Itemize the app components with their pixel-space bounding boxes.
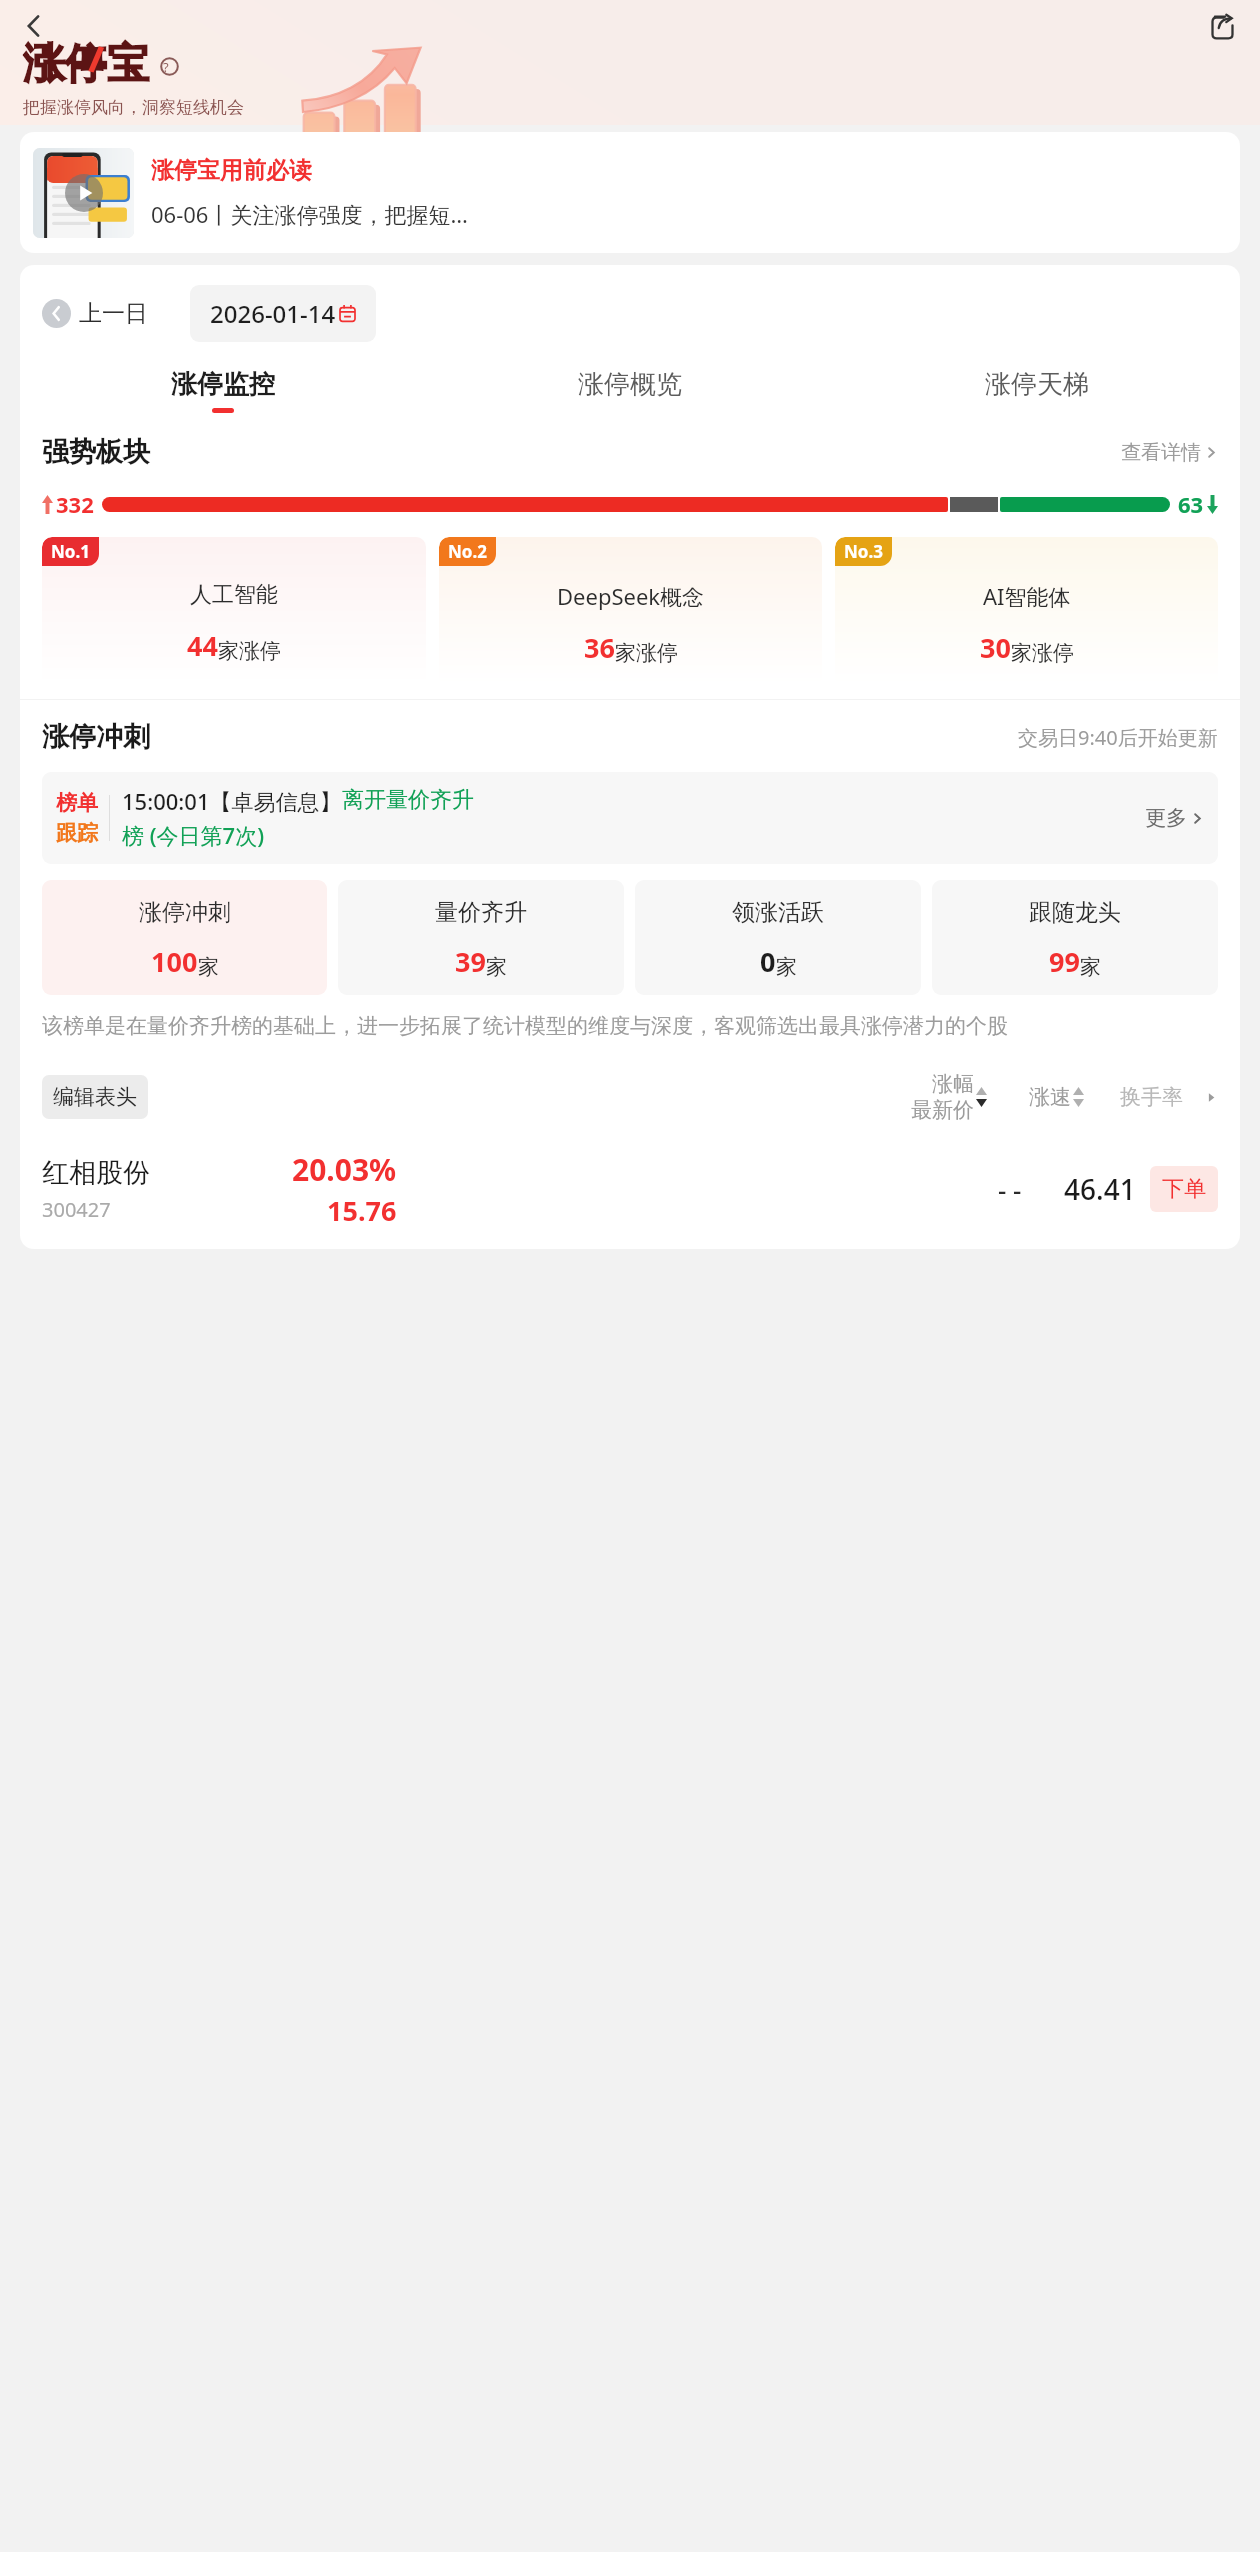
- staticText: 跟踪: [56, 820, 98, 846]
- button[interactable]: 涨停监控: [20, 368, 426, 413]
- staticText: 332: [56, 489, 94, 519]
- button[interactable]: 查看详情: [1121, 440, 1218, 465]
- staticText: 家涨停: [1011, 640, 1074, 666]
- staticText: 20.03%: [292, 1149, 397, 1190]
- staticText: 0: [760, 943, 776, 980]
- staticText: 30: [980, 629, 1011, 666]
- staticText: AI智能体: [983, 581, 1071, 611]
- staticText: 交易日9:40后开始更新: [1018, 724, 1218, 751]
- staticText: 上一日: [79, 299, 148, 328]
- staticText: DeepSeek概念: [557, 581, 705, 611]
- staticText: 300427: [42, 1196, 111, 1223]
- button[interactable]: 涨停宝用前必读: [20, 132, 1240, 253]
- button[interactable]: No.3: [835, 537, 1218, 685]
- staticText: 家: [486, 954, 507, 980]
- staticText: 36: [584, 629, 615, 666]
- staticText: 家: [1080, 954, 1101, 980]
- button[interactable]: 跟随龙头: [932, 880, 1218, 995]
- staticText: 家涨停: [615, 640, 678, 666]
- staticText: No.2: [448, 540, 487, 563]
- staticText: 家: [198, 954, 219, 980]
- staticText: 更多: [1145, 805, 1187, 831]
- staticText: 涨停冲刺: [139, 898, 231, 927]
- staticText: 2026-01-14: [210, 297, 336, 330]
- staticText: ?: [163, 58, 169, 76]
- staticText: 15.76: [327, 1192, 397, 1229]
- staticText: 家涨停: [218, 638, 281, 664]
- staticText: 100: [151, 943, 198, 980]
- staticText: 换手率: [1120, 1084, 1183, 1110]
- button[interactable]: Back: [8, 0, 60, 52]
- staticText: 涨停冲刺: [42, 720, 150, 754]
- staticText: 领涨活跃: [732, 898, 824, 927]
- staticText: 涨停宝用前必读: [151, 156, 312, 185]
- staticText: 跟随龙头: [1029, 898, 1121, 927]
- staticText: 把握涨停风向，洞察短线机会: [23, 97, 244, 118]
- button[interactable]: 上一日: [42, 299, 148, 328]
- button[interactable]: Share: [1196, 1, 1248, 53]
- button[interactable]: 涨速: [1029, 1084, 1084, 1110]
- button[interactable]: No.1: [42, 537, 426, 685]
- button[interactable]: 2026-01-14: [190, 285, 376, 342]
- button[interactable]: 量价齐升: [338, 880, 624, 995]
- button[interactable]: More columns: [1205, 1091, 1218, 1104]
- staticText: 涨停概览: [578, 368, 682, 401]
- staticText: 15:00:01【卓易信息】: [122, 786, 342, 816]
- staticText: 涨幅: [932, 1071, 974, 1097]
- button[interactable]: 涨停概览: [426, 368, 833, 401]
- button[interactable]: 编辑表头: [42, 1075, 148, 1119]
- staticText: No.1: [51, 540, 90, 563]
- staticText: 涨停宝: [23, 38, 149, 91]
- button[interactable]: 下单: [1150, 1166, 1218, 1212]
- staticText: 涨停监控: [171, 368, 275, 401]
- staticText: - -: [998, 1172, 1022, 1207]
- staticText: 下单: [1162, 1175, 1206, 1203]
- staticText: 该榜单是在量价齐升榜的基础上，进一步拓展了统计模型的维度与深度，客观筛选出最具涨…: [42, 1013, 1008, 1039]
- staticText: 家: [776, 954, 797, 980]
- staticText: 63: [1178, 489, 1204, 519]
- staticText: No.3: [844, 540, 883, 563]
- staticText: 最新价: [911, 1097, 974, 1123]
- staticText: 99: [1049, 943, 1080, 980]
- staticText: 44: [187, 627, 218, 664]
- staticText: 红相股份: [42, 1156, 150, 1190]
- button[interactable]: 涨停冲刺: [42, 880, 327, 995]
- staticText: 榜 (今日第7次): [122, 820, 265, 850]
- button[interactable]: 换手率: [1120, 1084, 1183, 1110]
- staticText: 涨停天梯: [985, 368, 1089, 401]
- staticText: 离开量价齐升: [342, 786, 474, 814]
- button[interactable]: 红相股份: [42, 1139, 1218, 1239]
- button[interactable]: No.2: [439, 537, 822, 685]
- staticText: 46.41: [1064, 1170, 1136, 1208]
- staticText: 06-06丨关注涨停强度，把握短…: [151, 199, 468, 229]
- staticText: 编辑表头: [53, 1084, 137, 1110]
- staticText: 量价齐升: [435, 898, 527, 927]
- staticText: 人工智能: [190, 581, 278, 609]
- button[interactable]: 涨幅: [911, 1071, 987, 1123]
- button[interactable]: 榜单: [42, 772, 1218, 864]
- staticText: 榜单: [56, 790, 98, 816]
- staticText: 涨速: [1029, 1084, 1071, 1110]
- button[interactable]: 领涨活跃: [635, 880, 921, 995]
- staticText: 39: [455, 943, 486, 980]
- staticText: 强势板块: [42, 435, 150, 469]
- staticText: 查看详情: [1121, 440, 1201, 465]
- button[interactable]: 涨停天梯: [833, 368, 1240, 401]
